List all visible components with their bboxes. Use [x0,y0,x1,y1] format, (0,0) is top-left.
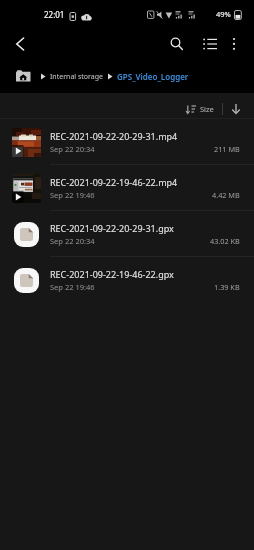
button[interactable]: GPS_Video_Logger [117,71,189,82]
button[interactable]: REC-2021-09-22-19-46-22.mp4 [0,165,254,211]
staticText: 22:01 [44,9,65,20]
staticText: Size [200,104,214,114]
staticText: Sep 22 19:46 [50,190,95,200]
staticText: REC-2021-09-22-20-29-31.gpx [50,222,174,234]
button[interactable]: REC-2021-09-22-20-29-31.mp4 [0,119,254,165]
staticText: REC-2021-09-22-19-46-22.mp4 [50,176,178,188]
button[interactable]: Size [186,103,241,115]
button[interactable]: REC-2021-09-22-19-46-22.gpx [0,257,254,303]
staticText: 1.39 KB [214,282,240,292]
staticText: 49% [216,9,231,19]
staticText: Sep 22 19:46 [50,282,95,292]
button[interactable] [165,27,189,60]
button[interactable] [222,27,246,60]
staticText: REC-2021-09-22-20-29-31.mp4 [50,130,178,142]
button[interactable] [198,27,222,60]
button[interactable] [0,27,40,60]
button[interactable] [16,60,38,93]
staticText: Sep 22 20:34 [50,144,95,154]
staticText: REC-2021-09-22-19-46-22.gpx [50,268,174,280]
staticText: 4.42 MB [212,190,240,200]
staticText: Sep 22 20:34 [50,236,95,246]
button[interactable]: Internal storage [50,72,103,82]
staticText: 43.02 KB [210,236,240,246]
staticText: 211 MB [214,144,240,154]
button[interactable]: REC-2021-09-22-20-29-31.gpx [0,211,254,257]
staticText: GPS_Video_Logger [117,71,189,82]
staticText: Internal storage [50,72,103,82]
